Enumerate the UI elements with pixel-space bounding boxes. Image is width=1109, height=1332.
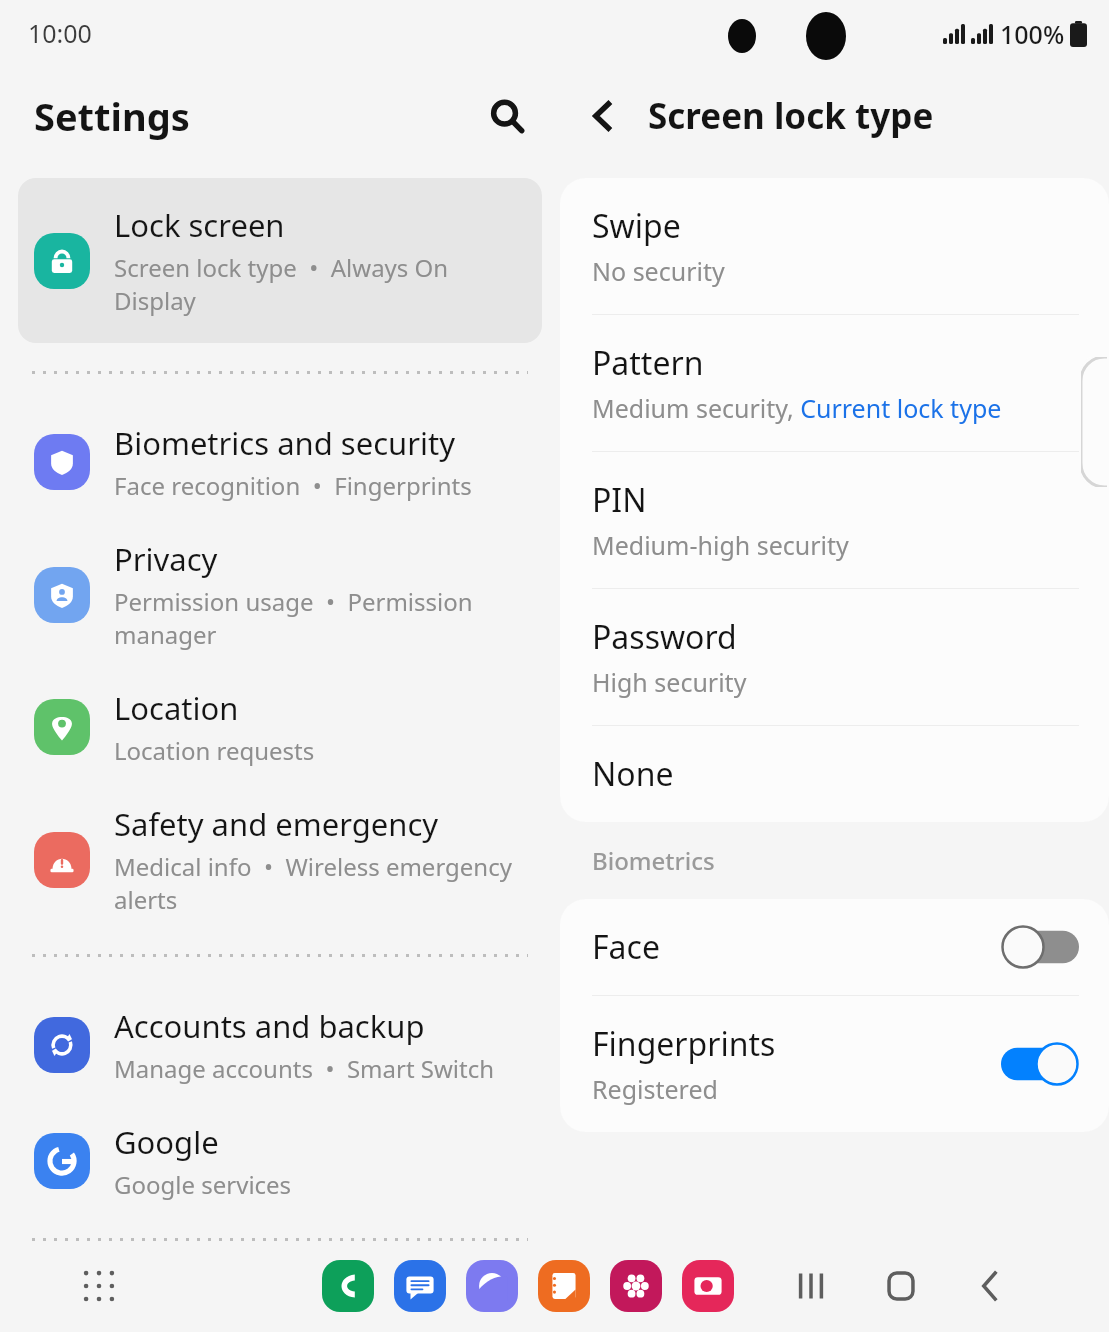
staticText: 10:00: [28, 16, 92, 50]
staticText: Biometrics: [592, 844, 715, 877]
staticText: Biometrics and security: [114, 422, 455, 464]
staticText: Face recognition • Fingerprints: [114, 469, 472, 502]
button[interactable]: Privacy: [18, 534, 542, 655]
staticText: Medium security, Current lock type: [592, 391, 1002, 425]
staticText: PIN: [592, 478, 647, 522]
staticText: Face: [592, 925, 660, 969]
button[interactable]: Apps: [68, 1255, 130, 1317]
button[interactable]: Location: [18, 683, 542, 771]
button[interactable]: Gallery: [610, 1260, 662, 1312]
button[interactable]: Biometrics and security: [18, 418, 542, 506]
staticText: Pattern: [592, 341, 704, 385]
staticText: Google: [114, 1121, 219, 1163]
staticText: No security: [592, 254, 725, 288]
staticText: Fingerprints: [592, 1022, 776, 1066]
staticText: Manage accounts • Smart Switch: [114, 1052, 495, 1085]
button[interactable]: Back: [965, 1260, 1017, 1312]
staticText: Google services: [114, 1168, 292, 1201]
staticText: Registered: [592, 1072, 718, 1106]
button[interactable]: PIN: [560, 452, 1109, 588]
button[interactable]: Messages: [394, 1260, 446, 1312]
staticText: Screen lock type • Always On Display: [114, 251, 526, 317]
staticText: Screen lock type: [648, 92, 934, 140]
button[interactable]: Swipe: [560, 178, 1109, 314]
button[interactable]: Home: [875, 1260, 927, 1312]
staticText: Medium-high security: [592, 528, 849, 562]
staticText: Lock screen: [114, 204, 285, 246]
staticText: Settings: [34, 90, 190, 142]
button[interactable]: Safety and emergency: [18, 799, 542, 920]
button[interactable]: Camera: [682, 1260, 734, 1312]
staticText: Swipe: [592, 204, 681, 248]
button[interactable]: Toggle: [1001, 1042, 1079, 1086]
button[interactable]: Face: [560, 899, 1109, 995]
staticText: Location requests: [114, 734, 315, 767]
button[interactable]: Notes: [538, 1260, 590, 1312]
button[interactable]: Password: [560, 589, 1109, 725]
staticText: Permission usage • Permission manager: [114, 585, 526, 651]
staticText: Privacy: [114, 538, 218, 580]
button[interactable]: None: [560, 726, 1109, 822]
button[interactable]: Lock screen: [18, 178, 542, 343]
staticText: 100%: [1000, 17, 1065, 51]
button[interactable]: Search: [476, 85, 538, 147]
button[interactable]: Toggle: [1001, 925, 1079, 969]
button[interactable]: Google: [18, 1117, 542, 1205]
staticText: Location: [114, 687, 239, 729]
button[interactable]: Accounts and backup: [18, 1001, 542, 1089]
button[interactable]: Back: [572, 85, 634, 147]
staticText: Medical info • Wireless emergency alerts: [114, 850, 526, 916]
staticText: Safety and emergency: [114, 803, 439, 845]
button[interactable]: Fingerprints: [560, 996, 1109, 1132]
button[interactable]: Phone: [322, 1260, 374, 1312]
button[interactable]: Pattern: [560, 315, 1109, 451]
button[interactable]: Recents: [785, 1260, 837, 1312]
button[interactable]: Internet: [466, 1260, 518, 1312]
staticText: High security: [592, 665, 747, 699]
staticText: None: [592, 752, 674, 796]
staticText: Password: [592, 615, 737, 659]
staticText: Accounts and backup: [114, 1005, 425, 1047]
